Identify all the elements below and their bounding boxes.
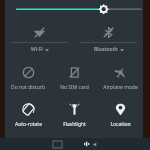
staticText: Airplane mode xyxy=(103,84,138,91)
staticText: Wi-Fi xyxy=(31,46,43,53)
button[interactable]: Brightness xyxy=(5,0,143,20)
button[interactable]: Recents xyxy=(53,141,62,148)
button[interactable]: Flashlight xyxy=(51,96,97,133)
staticText: Auto-rotate xyxy=(15,121,42,128)
button[interactable]: Auto-rotate xyxy=(5,96,51,133)
staticText: Do not disturb xyxy=(11,84,45,91)
button[interactable]: Airplane mode xyxy=(97,59,143,96)
button[interactable]: Do not disturb xyxy=(5,59,51,96)
staticText: Location xyxy=(110,121,131,128)
button[interactable]: Bluetooth xyxy=(80,22,137,59)
button[interactable]: Wi-Fi xyxy=(11,22,68,59)
staticText: Bluetooth xyxy=(94,46,118,53)
button[interactable]: Location xyxy=(97,96,143,133)
button[interactable]: No SIM card xyxy=(51,59,97,96)
staticText: No SIM card xyxy=(60,84,89,91)
staticText: Flashlight xyxy=(63,121,86,128)
